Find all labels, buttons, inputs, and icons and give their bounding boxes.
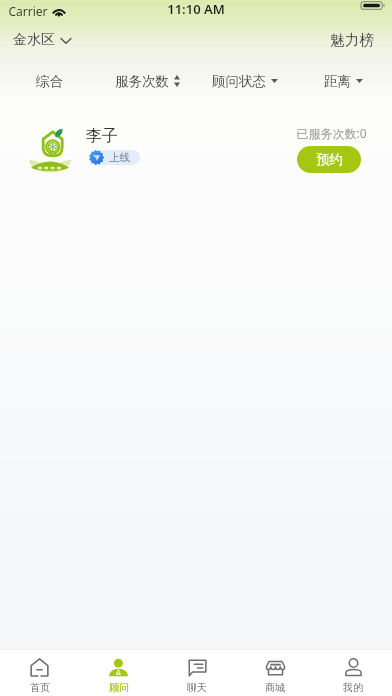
staticText: 预约 — [316, 151, 343, 168]
button[interactable]: 顾问状态 — [196, 58, 294, 104]
button[interactable]: 魅力榜 — [322, 31, 392, 49]
staticText: 顾问状态 — [212, 73, 266, 90]
staticText: Carrier — [8, 3, 48, 19]
staticText: 金水区 — [13, 31, 55, 49]
staticText: 综合 — [36, 73, 63, 90]
staticText: 魅力榜 — [330, 31, 374, 49]
staticText: 商城 — [265, 681, 285, 694]
staticText: 服务次数 — [115, 73, 169, 90]
button[interactable]: 预约 — [297, 146, 361, 173]
button[interactable]: Advisor avatar — [0, 104, 392, 188]
button[interactable]: 首页 — [0, 658, 79, 696]
button[interactable]: 我的 — [314, 658, 392, 696]
staticText: 上线 — [109, 151, 130, 164]
button[interactable]: 顾问 — [79, 658, 158, 696]
button[interactable]: 商城 — [236, 658, 314, 696]
button[interactable]: 距离 — [294, 58, 392, 104]
staticText: 已服务次数:0 — [296, 125, 367, 141]
staticText: 李子 — [86, 126, 118, 146]
staticText: 11:10 AM — [167, 0, 225, 18]
other: Advisor avatar — [26, 124, 74, 180]
staticText: 首页 — [30, 681, 50, 694]
button[interactable]: 金水区 — [0, 31, 79, 49]
staticText: 我的 — [343, 681, 363, 694]
staticText: 顾问 — [109, 681, 129, 694]
staticText: 聊天 — [187, 681, 207, 694]
staticText: 距离 — [324, 73, 351, 90]
button[interactable]: 服务次数 — [98, 58, 196, 104]
button[interactable]: 聊天 — [158, 658, 236, 696]
button[interactable]: 综合 — [0, 58, 98, 104]
